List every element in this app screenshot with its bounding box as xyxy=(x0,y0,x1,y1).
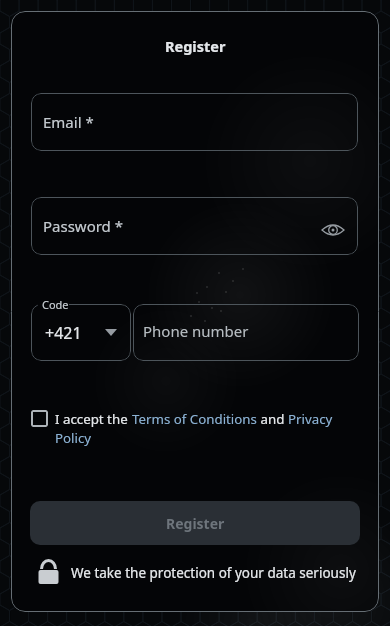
staticText: and xyxy=(257,410,288,428)
button[interactable]: Policy xyxy=(55,429,92,447)
staticText: We take the protection of your data seri… xyxy=(71,564,356,582)
staticText: Email * xyxy=(43,112,94,132)
button[interactable] xyxy=(31,410,48,427)
button[interactable]: Email * xyxy=(31,93,358,151)
button[interactable]: Register xyxy=(30,501,360,545)
staticText: +421 xyxy=(45,322,82,344)
staticText: Password * xyxy=(43,216,124,236)
staticText: Phone number xyxy=(143,321,249,341)
button[interactable]: +421 xyxy=(31,304,131,361)
staticText: Register xyxy=(166,514,225,533)
button[interactable]: Phone number xyxy=(133,304,359,361)
staticText: Code xyxy=(42,297,69,312)
button[interactable]: Password * xyxy=(31,197,358,255)
button[interactable]: Privacy xyxy=(288,410,333,428)
button[interactable]: Terms of Conditions xyxy=(132,410,257,428)
staticText: Register xyxy=(165,36,226,56)
staticText: I accept the xyxy=(55,410,132,428)
